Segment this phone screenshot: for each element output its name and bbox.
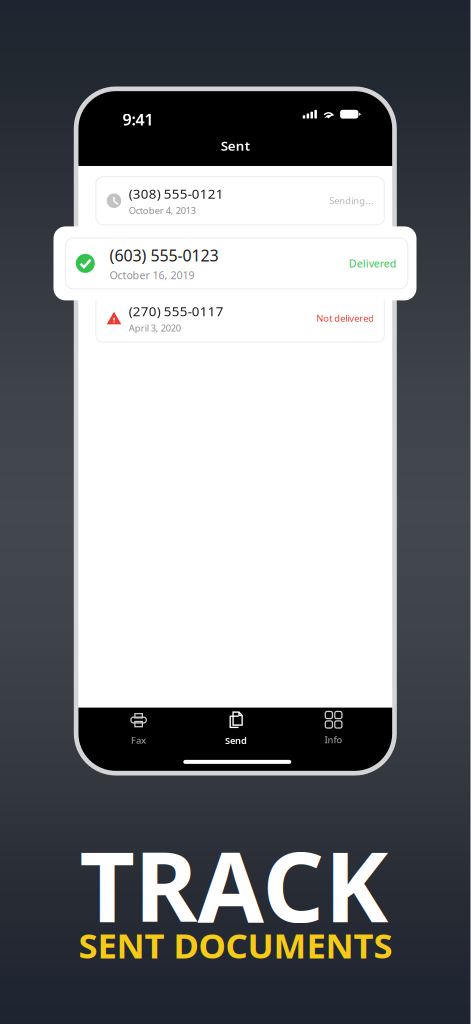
button[interactable]: (270) 555-0117: [96, 294, 384, 342]
staticText: Send: [225, 734, 247, 747]
staticText: Not delivered: [316, 312, 374, 324]
staticText: Info: [325, 734, 343, 746]
staticText: October 16, 2019: [109, 268, 194, 282]
staticText: (308) 555-0121: [129, 185, 224, 202]
staticText: April 3, 2020: [129, 322, 181, 334]
staticText: Sending...: [329, 195, 374, 207]
button[interactable]: (308) 555-0121: [96, 177, 384, 225]
button[interactable]: Fax: [109, 713, 169, 744]
staticText: Sent: [221, 137, 250, 154]
button[interactable]: (603) 555-0123: [53, 226, 416, 300]
button[interactable]: Info: [304, 713, 364, 744]
staticText: Fax: [131, 734, 146, 746]
staticText: 9:41: [122, 109, 153, 130]
staticText: TRACK: [79, 821, 388, 949]
staticText: October 4, 2013: [129, 204, 196, 217]
staticText: Delivered: [349, 256, 397, 270]
staticText: (270) 555-0117: [129, 302, 224, 320]
staticText: SENT DOCUMENTS: [78, 922, 392, 968]
staticText: (603) 555-0123: [109, 245, 218, 266]
button[interactable]: Send: [206, 713, 266, 744]
